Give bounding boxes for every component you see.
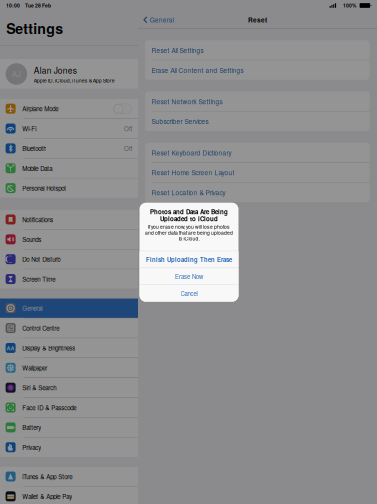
staticText: General xyxy=(22,304,42,313)
button[interactable]: iTunes & App Store xyxy=(0,467,138,486)
staticText: Sounds xyxy=(22,235,41,244)
button[interactable]: Screen Time xyxy=(0,269,138,289)
button[interactable]: Reset Network Settings xyxy=(145,92,369,111)
staticText: Mobile Data xyxy=(22,164,52,173)
staticText: Bluetooth xyxy=(22,144,46,153)
staticText: Finish Uploading Then Erase xyxy=(146,255,232,264)
button[interactable]: Reset Location & Privacy xyxy=(145,183,369,202)
staticText: Subscriber Services xyxy=(151,117,208,126)
button[interactable]: Erase All Content and Settings xyxy=(145,60,369,80)
staticText: Wi-Fi xyxy=(22,124,36,133)
staticText: Off xyxy=(124,124,132,133)
staticText: Reset Keyboard Dictionary xyxy=(151,148,231,157)
staticText: Apple ID, iCloud, iTunes & App Store xyxy=(34,76,115,84)
staticText: Siri & Search xyxy=(22,383,56,392)
button[interactable]: Mobile Data xyxy=(0,159,138,178)
staticText: Erase All Content and Settings xyxy=(151,65,243,75)
staticText: Notifications xyxy=(22,215,53,224)
staticText: Cancel xyxy=(180,289,197,298)
staticText: Reset Location & Privacy xyxy=(151,188,225,197)
button[interactable]: AJ xyxy=(0,59,138,89)
staticText: Battery xyxy=(22,423,41,432)
staticText: If you erase now, you will lose photos xyxy=(148,223,230,230)
button[interactable]: Personal Hotspot xyxy=(0,178,138,198)
staticText: Do Not Disturb xyxy=(22,255,60,264)
button[interactable]: Sounds xyxy=(0,230,138,249)
staticText: Privacy xyxy=(22,443,41,452)
button[interactable]: Cancel xyxy=(139,285,238,301)
button[interactable]: Privacy xyxy=(0,438,138,457)
button[interactable]: Do Not Disturb xyxy=(0,249,138,269)
button[interactable]: General xyxy=(138,11,174,28)
button[interactable]: Airplane Mode xyxy=(0,99,138,118)
button[interactable]: General xyxy=(0,298,138,318)
button[interactable]: Battery xyxy=(0,418,138,437)
button[interactable]: Control Centre xyxy=(0,318,138,338)
button[interactable]: Reset All Settings xyxy=(145,40,369,60)
button[interactable]: Siri & Search xyxy=(0,378,138,397)
button[interactable]: Notifications xyxy=(0,210,138,229)
staticText: Alan Jones xyxy=(34,64,77,76)
staticText: Off xyxy=(124,144,132,153)
staticText: General xyxy=(150,15,174,24)
staticText: Reset All Settings xyxy=(151,45,203,55)
staticText: Control Centre xyxy=(22,324,59,332)
staticText: Uploaded to iCloud xyxy=(160,214,218,223)
button[interactable]: Subscriber Services xyxy=(145,112,369,131)
button[interactable]: AA xyxy=(0,338,138,358)
staticText: AA xyxy=(7,344,15,352)
staticText: Erase Now xyxy=(175,272,203,281)
staticText: Photos and Data Are Being xyxy=(150,207,228,216)
staticText: 10:00 xyxy=(6,2,20,9)
staticText: Airplane Mode xyxy=(22,104,58,113)
staticText: Wallpaper xyxy=(22,363,47,372)
staticText: Reset Network Settings xyxy=(151,97,222,106)
staticText: to iCloud. xyxy=(178,235,199,242)
staticText: 100% xyxy=(343,2,357,9)
staticText: Wallet & Apple Pay xyxy=(22,492,72,501)
button[interactable]: Face ID & Passcode xyxy=(0,398,138,417)
staticText: Tue 28 Feb xyxy=(25,2,51,9)
staticText: and other data that are being uploaded xyxy=(145,229,233,236)
staticText: Personal Hotspot xyxy=(22,184,66,192)
staticText: Display & Brightness xyxy=(22,343,75,352)
staticText: AJ xyxy=(12,69,21,79)
button[interactable]: Wallpaper xyxy=(0,358,138,377)
staticText: Screen Time xyxy=(22,275,55,283)
staticText: Settings xyxy=(6,18,63,38)
button[interactable]: Reset Keyboard Dictionary xyxy=(145,143,369,162)
button[interactable]: Erase Now xyxy=(139,268,238,285)
staticText: iTunes & App Store xyxy=(22,472,72,481)
button[interactable]: Wallet & Apple Pay xyxy=(0,487,138,504)
staticText: Face ID & Passcode xyxy=(22,403,76,412)
button[interactable]: Bluetooth xyxy=(0,139,138,158)
button[interactable]: Finish Uploading Then Erase xyxy=(139,251,238,268)
staticText: Reset xyxy=(248,15,267,24)
button[interactable]: Wi-Fi xyxy=(0,119,138,138)
button[interactable]: Reset Home Screen Layout xyxy=(145,163,369,182)
staticText: Reset Home Screen Layout xyxy=(151,168,234,177)
